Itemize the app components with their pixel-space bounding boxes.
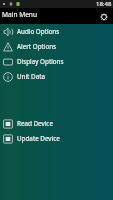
button[interactable]: Alert Options [0, 39, 113, 54]
staticText: 18:48 [96, 0, 112, 8]
button[interactable]: Display Options [0, 54, 113, 69]
staticText: Update Device [17, 134, 60, 143]
button[interactable]: Audio Options [0, 24, 113, 39]
staticText: Unit Data [17, 72, 45, 81]
button[interactable]: Settings [97, 10, 110, 23]
staticText: Read Device [17, 119, 53, 128]
staticText: Display Options [17, 57, 64, 66]
staticText: Audio Options [17, 27, 60, 36]
button[interactable]: Read Device [0, 116, 113, 131]
staticText: Alert Options [17, 42, 57, 51]
button[interactable]: Unit Data [0, 69, 113, 84]
staticText: Main Menu [2, 10, 38, 19]
button[interactable]: Update Device [0, 131, 113, 146]
